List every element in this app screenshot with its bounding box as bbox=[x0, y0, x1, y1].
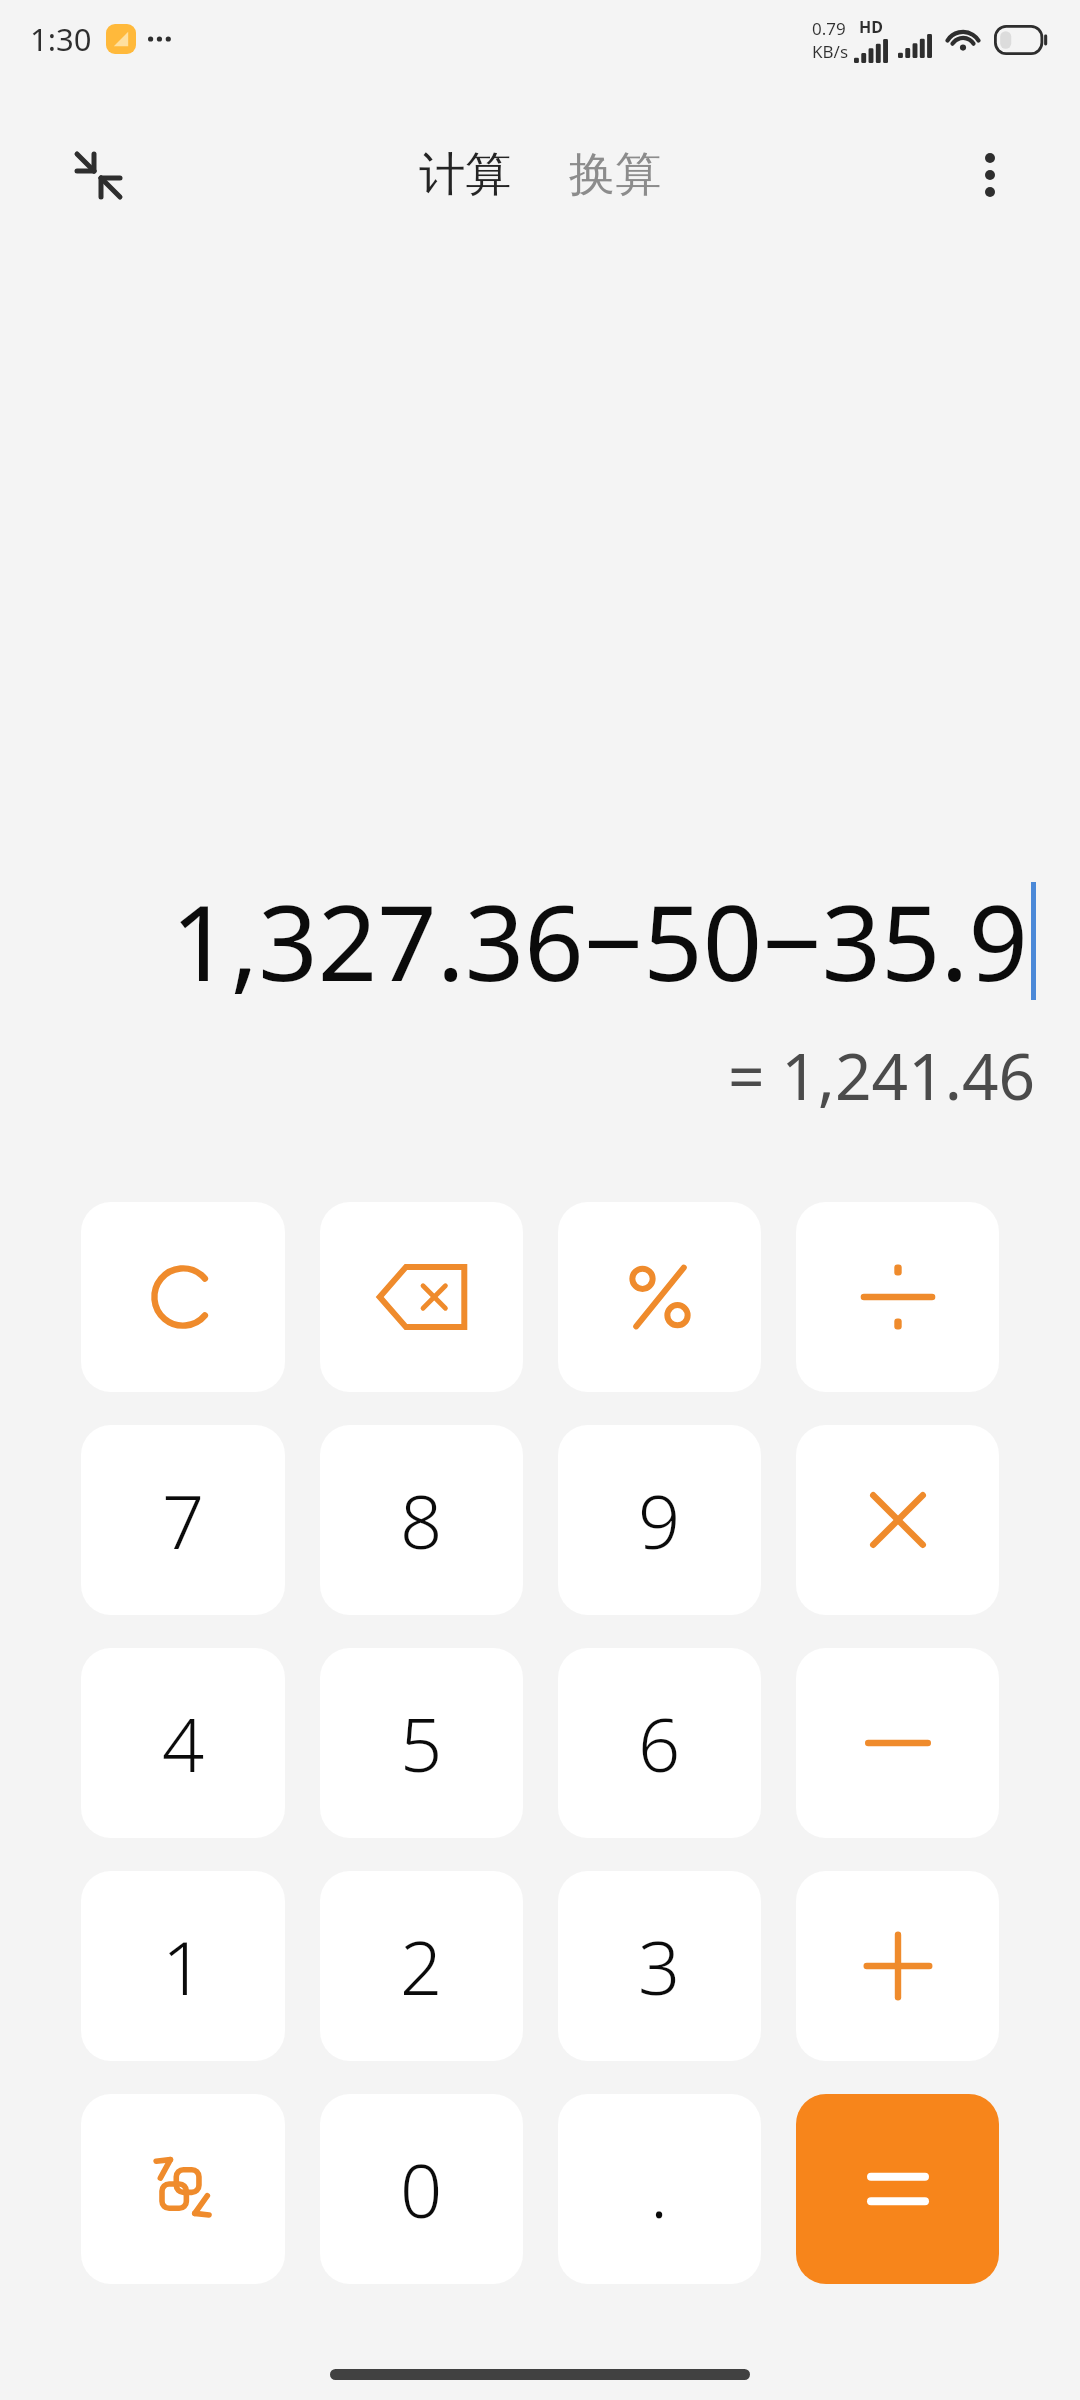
button[interactable]: 1 bbox=[81, 1871, 285, 2061]
staticText: 0 bbox=[400, 2139, 443, 2240]
button[interactable]: 3 bbox=[558, 1871, 761, 2061]
button[interactable]: . bbox=[558, 2094, 761, 2284]
button[interactable]: 5 bbox=[320, 1648, 523, 1838]
staticText: 4 bbox=[162, 1693, 205, 1794]
button[interactable]: 2 bbox=[320, 1871, 523, 2061]
button[interactable]: 7 bbox=[81, 1425, 285, 1615]
button[interactable]: Multiply bbox=[796, 1425, 999, 1615]
button[interactable]: 换算 bbox=[555, 136, 675, 214]
button[interactable]: Scientific keypad bbox=[81, 2094, 285, 2284]
button[interactable]: 0 bbox=[320, 2094, 523, 2284]
staticText: 3 bbox=[638, 1916, 681, 2017]
staticText: 7 bbox=[162, 1470, 205, 1571]
staticText: HD bbox=[859, 16, 883, 38]
staticText: 1 bbox=[162, 1916, 205, 2017]
button[interactable]: Backspace bbox=[320, 1202, 523, 1392]
button[interactable]: Percent bbox=[558, 1202, 761, 1392]
staticText: 0.79 bbox=[812, 17, 846, 40]
staticText: 8 bbox=[400, 1470, 443, 1571]
staticText: 9 bbox=[638, 1470, 681, 1571]
button[interactable]: 6 bbox=[558, 1648, 761, 1838]
button[interactable]: Plus bbox=[796, 1871, 999, 2061]
button[interactable]: Collapse bbox=[60, 137, 136, 213]
button[interactable]: Clear bbox=[81, 1202, 285, 1392]
staticText: 5 bbox=[400, 1693, 443, 1794]
button[interactable]: More options bbox=[952, 137, 1028, 213]
button[interactable]: 4 bbox=[81, 1648, 285, 1838]
button[interactable]: Divide bbox=[796, 1202, 999, 1392]
staticText: 1,327.36−50−35.9 bbox=[171, 870, 1028, 1012]
button[interactable]: 计算 bbox=[405, 136, 525, 214]
staticText: . bbox=[650, 2139, 669, 2240]
staticText: 1:30 bbox=[30, 18, 92, 60]
button[interactable]: 9 bbox=[558, 1425, 761, 1615]
button[interactable]: Minus bbox=[796, 1648, 999, 1838]
button[interactable]: 8 bbox=[320, 1425, 523, 1615]
staticText: = 1,241.46 bbox=[728, 1032, 1036, 1119]
staticText: 计算 bbox=[419, 146, 511, 204]
staticText: KB/s bbox=[812, 40, 849, 63]
staticText: 6 bbox=[638, 1693, 681, 1794]
staticText: 换算 bbox=[569, 146, 661, 204]
staticText: 2 bbox=[400, 1916, 443, 2017]
button[interactable]: Equals bbox=[796, 2094, 999, 2284]
